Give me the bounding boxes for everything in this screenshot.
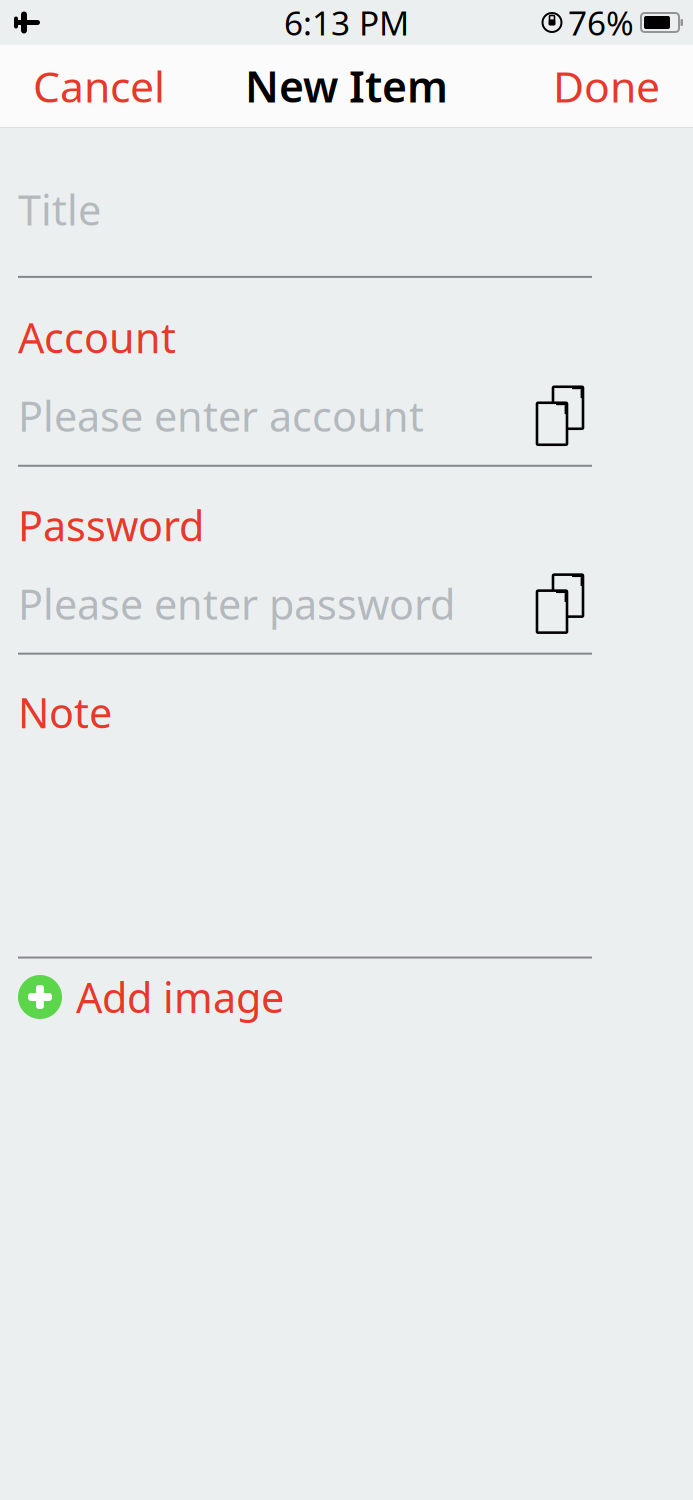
staticText: Cancel (33, 58, 165, 114)
button[interactable]: Cancel (19, 44, 179, 128)
staticText: Done (553, 58, 660, 114)
staticText: 76% (568, 0, 634, 45)
button[interactable]: Add image (18, 959, 592, 1035)
staticText: Please enter password (18, 576, 455, 631)
staticText: Please enter account (18, 388, 424, 443)
button[interactable]: Copy account (528, 385, 592, 447)
staticText: Title (18, 182, 101, 237)
button[interactable]: Copy password (528, 573, 592, 635)
button[interactable]: Done (539, 44, 674, 128)
staticText: 6:13 PM (284, 0, 409, 45)
staticText: Note (18, 685, 112, 740)
staticText: New Item (245, 58, 448, 114)
staticText: Account (18, 310, 176, 365)
staticText: Password (18, 498, 204, 553)
staticText: Add image (76, 970, 284, 1024)
